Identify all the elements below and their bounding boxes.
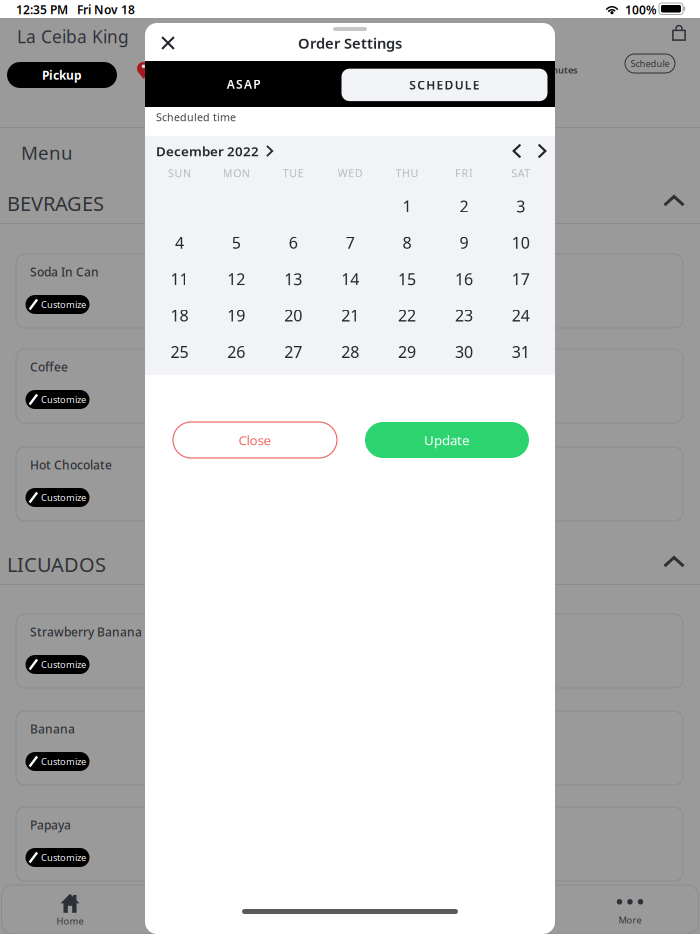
button[interactable]: 26 bbox=[208, 334, 265, 370]
button[interactable]: 23 bbox=[435, 297, 492, 334]
button[interactable]: 2 bbox=[435, 188, 492, 224]
button[interactable]: Pickup bbox=[7, 62, 117, 88]
button[interactable]: 30 bbox=[435, 334, 492, 370]
button[interactable]: 12 bbox=[208, 261, 265, 297]
button[interactable]: BEVRAGES bbox=[0, 182, 700, 226]
staticText: 4 bbox=[175, 232, 184, 253]
button[interactable]: Cart bbox=[670, 24, 688, 42]
staticText: 22 bbox=[398, 305, 416, 326]
staticText: 16 bbox=[455, 268, 473, 290]
button[interactable]: 16 bbox=[435, 261, 492, 297]
button[interactable]: Home bbox=[30, 889, 109, 933]
staticText: Strawberry Banana bbox=[30, 624, 142, 640]
staticText: 26 bbox=[227, 341, 245, 362]
button[interactable]: 28 bbox=[322, 334, 379, 370]
button[interactable]: Banana bbox=[16, 711, 683, 785]
button[interactable]: LICUADOS bbox=[0, 543, 700, 587]
button[interactable]: December 2022 bbox=[156, 138, 273, 164]
button[interactable]: 1 bbox=[379, 188, 435, 224]
staticText: ASAP bbox=[223, 76, 264, 92]
button[interactable]: 5 bbox=[208, 224, 265, 261]
button[interactable]: 15 bbox=[379, 261, 435, 297]
button[interactable]: Soda In Can bbox=[16, 254, 683, 328]
button[interactable]: 27 bbox=[265, 334, 322, 370]
staticText: December 2022 bbox=[156, 142, 259, 160]
staticText: Soda In Can bbox=[30, 264, 99, 280]
staticText: Customize bbox=[41, 851, 86, 864]
button[interactable]: 11 bbox=[151, 261, 208, 297]
staticText: 5 bbox=[232, 232, 241, 253]
staticText: Pickup bbox=[42, 67, 82, 83]
staticText: Customize bbox=[41, 393, 86, 406]
button[interactable]: 9 bbox=[435, 224, 492, 261]
staticText: SUN bbox=[168, 166, 191, 180]
staticText: SCHEDULE bbox=[405, 77, 484, 93]
button[interactable]: Next month bbox=[532, 138, 552, 164]
button[interactable]: 19 bbox=[208, 297, 265, 334]
staticText: 2 bbox=[459, 196, 468, 217]
button[interactable]: Strawberry Banana bbox=[16, 614, 683, 688]
staticText: Banana bbox=[30, 721, 75, 737]
staticText: La Ceiba King bbox=[17, 25, 129, 48]
button[interactable]: 24 bbox=[492, 297, 549, 334]
button[interactable]: 31 bbox=[492, 334, 549, 370]
staticText: Customize bbox=[41, 491, 86, 504]
button[interactable]: 21 bbox=[322, 297, 379, 334]
button[interactable]: 7 bbox=[322, 224, 379, 261]
staticText: 13 bbox=[284, 268, 302, 290]
staticText: 100% bbox=[625, 2, 657, 18]
button[interactable]: 3 bbox=[492, 188, 549, 224]
staticText: 24 bbox=[512, 305, 530, 326]
button[interactable]: 8 bbox=[379, 224, 435, 261]
staticText: 8 bbox=[403, 232, 412, 253]
staticText: Papaya bbox=[30, 817, 71, 833]
staticText: 21 bbox=[341, 305, 359, 326]
staticText: 17 bbox=[512, 268, 530, 290]
staticText: Scheduled time bbox=[156, 110, 236, 124]
staticText: THU bbox=[396, 166, 419, 180]
staticText: 12:35 PM bbox=[16, 1, 68, 17]
button[interactable]: Update bbox=[365, 422, 529, 458]
staticText: FRI bbox=[455, 166, 473, 180]
staticText: 19 bbox=[227, 305, 245, 326]
staticText: 9 bbox=[459, 232, 468, 253]
button[interactable]: 13 bbox=[265, 261, 322, 297]
button[interactable]: 25 bbox=[151, 334, 208, 370]
staticText: BEVRAGES bbox=[7, 190, 104, 217]
button[interactable]: Papaya bbox=[16, 807, 683, 881]
button[interactable]: 4 bbox=[151, 224, 208, 261]
button[interactable]: SCHEDULE bbox=[341, 69, 547, 101]
button[interactable]: 10 bbox=[492, 224, 549, 261]
staticText: SAT bbox=[511, 166, 530, 180]
button[interactable]: 22 bbox=[379, 297, 435, 334]
staticText: Hot Chocolate bbox=[30, 457, 112, 473]
button[interactable]: Previous month bbox=[507, 138, 527, 164]
staticText: 23 bbox=[455, 305, 473, 326]
button[interactable]: 14 bbox=[322, 261, 379, 297]
button[interactable]: Hot Chocolate bbox=[16, 447, 683, 521]
button[interactable]: 29 bbox=[379, 334, 435, 370]
button[interactable]: 6 bbox=[265, 224, 322, 261]
button[interactable]: Close bbox=[173, 422, 337, 458]
staticText: Customize bbox=[41, 658, 86, 671]
button[interactable]: Schedule bbox=[625, 54, 675, 73]
staticText: Order Settings bbox=[298, 33, 402, 53]
button[interactable]: 17 bbox=[492, 261, 549, 297]
staticText: 20 bbox=[284, 305, 302, 326]
button[interactable]: Coffee bbox=[16, 349, 683, 423]
staticText: WED bbox=[338, 166, 363, 180]
button[interactable]: Close bbox=[156, 31, 180, 55]
staticText: 14 bbox=[341, 268, 359, 290]
staticText: 30 bbox=[455, 341, 473, 362]
staticText: MON bbox=[223, 166, 250, 180]
staticText: Fri Nov 18 bbox=[77, 1, 135, 17]
staticText: Home bbox=[56, 915, 83, 927]
button[interactable]: ASAP bbox=[145, 61, 342, 107]
button[interactable]: 18 bbox=[151, 297, 208, 334]
staticText: 25 bbox=[170, 341, 188, 362]
staticText: More bbox=[618, 914, 641, 926]
staticText: 28 bbox=[341, 341, 359, 362]
staticText: Customize bbox=[41, 298, 86, 311]
button[interactable]: More bbox=[590, 889, 669, 933]
button[interactable]: 20 bbox=[265, 297, 322, 334]
